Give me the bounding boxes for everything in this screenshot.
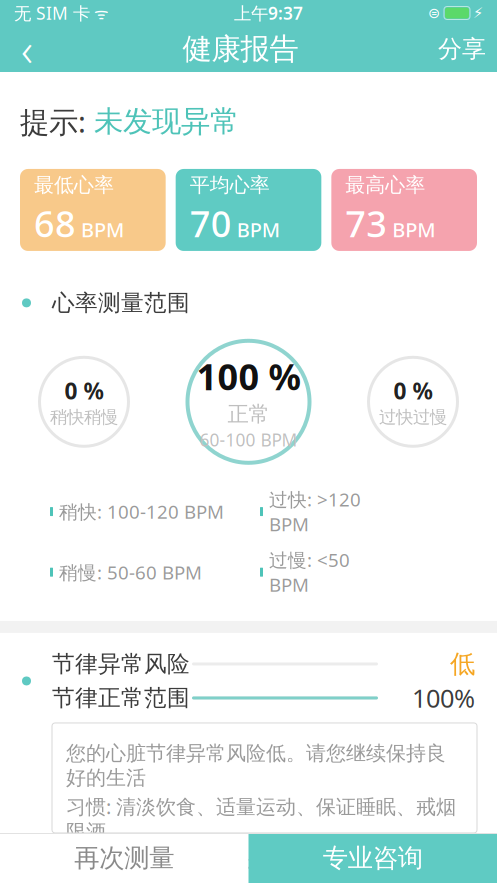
staticText: 节律异常风险 — [52, 650, 190, 678]
staticText: BPM — [392, 216, 435, 243]
staticText: 最低心率 — [34, 173, 114, 197]
staticText: 70 — [190, 199, 232, 247]
staticText: 100 % — [196, 352, 300, 400]
staticText: 0 % — [64, 376, 103, 406]
staticText: 无 SIM 卡 — [14, 1, 90, 24]
staticText: 过快过慢 — [379, 407, 447, 428]
staticText: 稍快: 100-120 BPM — [59, 499, 224, 524]
staticText: ‹ — [21, 19, 33, 79]
staticText: BPM — [237, 216, 280, 243]
staticText: 60-100 BPM — [199, 428, 297, 451]
button[interactable]: 分享 — [427, 26, 497, 72]
staticText: 健康报告 — [182, 31, 298, 67]
staticText: 正常 — [227, 401, 269, 427]
staticText: 未发现异常 — [94, 103, 239, 139]
staticText: ⊜ — [428, 5, 440, 21]
staticText: 0 % — [393, 376, 432, 406]
button[interactable]: 专业咨询 — [248, 833, 497, 883]
staticText: 分享 — [438, 34, 486, 64]
staticText: ᯤ — [90, 2, 109, 24]
staticText: 低 — [450, 648, 475, 679]
staticText: 68 — [34, 199, 76, 247]
staticText: 心率测量范围 — [52, 289, 190, 317]
staticText: 专业咨询 — [323, 842, 423, 873]
staticText: 少量的异常节律可以是心率不齐或者早搏、干扰引 — [66, 847, 446, 883]
button[interactable]: Back — [0, 26, 54, 72]
staticText: 73 — [345, 199, 387, 247]
staticText: BPM — [81, 216, 124, 243]
staticText: 过慢: <50 BPM — [269, 547, 350, 597]
staticText: 提示: — [20, 102, 94, 141]
staticText: 您的心脏节律异常风险低。请您继续保持良好的生活 — [66, 741, 446, 790]
staticText: 100% — [412, 681, 475, 715]
staticText: 习惯: 清淡饮食、适量运动、保证睡眠、戒烟限酒。 — [66, 793, 456, 844]
staticText: 稍慢: 50-60 BPM — [59, 560, 202, 585]
staticText: 最高心率 — [345, 173, 425, 197]
staticText: 再次测量 — [74, 842, 174, 873]
staticText: 平均心率 — [190, 173, 270, 197]
staticText: 稍快稍慢 — [50, 407, 118, 428]
staticText: 上午9:37 — [234, 1, 303, 24]
staticText: ⚡︎ — [473, 5, 483, 21]
button[interactable]: 再次测量 — [0, 833, 248, 883]
staticText: 过快: >120 BPM — [269, 487, 361, 536]
staticText: 节律正常范围 — [52, 684, 190, 712]
